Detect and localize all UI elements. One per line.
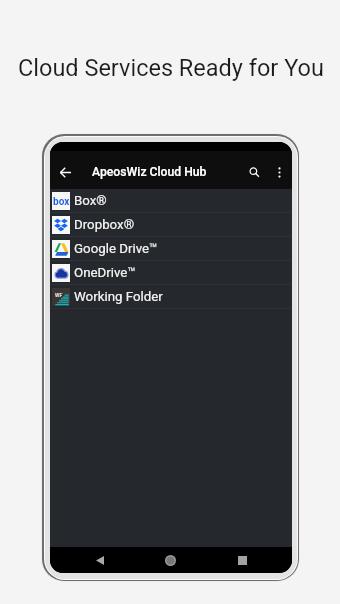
button[interactable]: Search [240,155,268,189]
staticText: Box® [74,193,107,209]
staticText: WF [55,292,63,298]
button[interactable]: WF [50,285,292,309]
button[interactable]: Recents [227,547,258,573]
staticText: ApeosWiz Cloud Hub [92,165,207,179]
staticText: box [53,196,70,208]
staticText: Google Drive™ [74,241,158,257]
staticText: OneDrive™ [74,265,136,281]
button[interactable]: Dropbox® [50,213,292,237]
button[interactable]: Home [155,547,186,573]
button[interactable]: OneDrive™ [50,261,292,285]
button[interactable]: Back [84,547,115,573]
button[interactable]: Back [50,155,81,189]
button[interactable]: box [50,189,292,213]
staticText: Dropbox® [74,217,135,233]
staticText: Cloud Services Ready for You [18,54,324,82]
button[interactable]: Google Drive™ [50,237,292,261]
staticText: Working Folder [74,289,163,305]
button[interactable]: More options [268,155,290,189]
